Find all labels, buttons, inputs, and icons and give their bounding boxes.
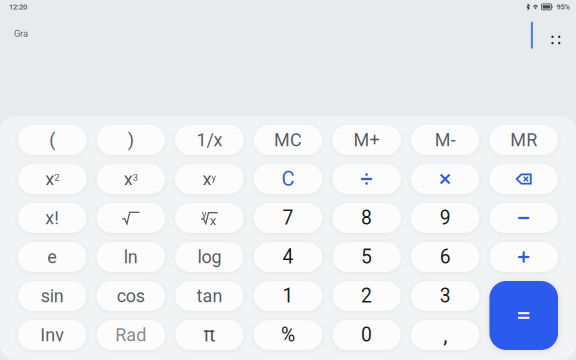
button[interactable]: ln [97,242,165,272]
button[interactable]: Backspace [489,164,558,194]
staticText: x [210,213,217,228]
staticText: Rad [115,324,146,346]
button[interactable]: Plus [489,242,558,272]
button[interactable]: Minus [489,203,558,233]
staticText: x2 [45,168,59,190]
staticText: MR [510,129,537,151]
button[interactable]: tan [175,281,244,311]
button[interactable]: e [18,242,87,272]
staticText: M- [435,129,456,151]
button[interactable]: log [175,242,244,272]
button[interactable]: Equals [489,281,558,350]
staticText: sin [41,285,64,307]
staticText: tan [196,285,222,307]
staticText: x! [45,207,59,229]
staticText: x3 [124,168,138,190]
button[interactable]: More options [546,31,565,49]
button[interactable]: M- [411,125,479,155]
button[interactable]: cos [97,281,165,311]
staticText: 8 [361,207,372,229]
staticText: , [443,322,447,347]
button[interactable]: % [254,320,322,350]
button[interactable]: MR [489,125,558,155]
button[interactable]: 5 [332,242,401,272]
button[interactable]: ) [97,125,165,155]
button[interactable]: C [254,164,322,194]
staticText: 3 [440,285,451,307]
staticText: xy [202,168,216,190]
staticText: 4 [282,246,293,268]
button[interactable]: M+ [332,125,401,155]
staticText: ln [124,246,138,268]
button[interactable]: 7 [254,203,322,233]
staticText: 1/x [196,129,222,151]
button[interactable]: sin [18,281,87,311]
staticText: 5 [361,246,372,268]
button[interactable]: 1/x [175,125,244,155]
staticText: 12:20 [9,2,27,11]
staticText: 95% [556,2,569,11]
staticText: 9 [440,207,451,229]
button[interactable]: x! [18,203,87,233]
staticText: e [47,246,57,268]
staticText: Inv [40,324,64,346]
staticText: C [281,167,294,191]
button[interactable]: Inv [18,320,87,350]
button[interactable]: 6 [411,242,479,272]
staticText: 2 [361,285,372,307]
button[interactable]: 8 [332,203,401,233]
button[interactable]: ( [18,125,87,155]
staticText: 6 [440,246,451,268]
button[interactable]: 0 [332,320,401,350]
staticText: 0 [361,324,372,346]
button[interactable]: 3 [411,281,479,311]
button[interactable]: Square root [97,203,165,233]
staticText: log [197,246,221,268]
button[interactable]: 1 [254,281,322,311]
staticText: y [202,208,207,220]
staticText: 7 [282,207,293,229]
button[interactable]: y-th root of x [175,203,244,233]
button[interactable]: x to the power y [175,164,244,194]
staticText: ( [49,129,55,151]
button[interactable]: Rad [97,320,165,350]
staticText: ) [128,129,134,151]
button[interactable]: x squared [18,164,87,194]
staticText: π [203,324,215,346]
button[interactable]: 2 [332,281,401,311]
button[interactable]: , [411,320,479,350]
staticText: 1 [282,285,293,307]
button[interactable]: Multiply [411,164,479,194]
button[interactable]: MC [254,125,322,155]
button[interactable]: 4 [254,242,322,272]
button[interactable]: 9 [411,203,479,233]
staticText: Gra [14,28,28,39]
button[interactable]: π [175,320,244,350]
staticText: % [281,324,295,346]
staticText: cos [117,285,145,307]
staticText: MC [274,129,302,151]
button[interactable]: x cubed [97,164,165,194]
button[interactable]: Divide [332,164,401,194]
staticText: M+ [354,129,380,151]
